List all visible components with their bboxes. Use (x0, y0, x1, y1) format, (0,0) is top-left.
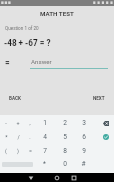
button[interactable]: 3 (74, 116, 93, 130)
staticText: . (29, 134, 31, 140)
staticText: 7 (43, 147, 47, 155)
button[interactable]: Backspace (96, 116, 114, 130)
button[interactable]: NEXT (86, 92, 112, 105)
button[interactable]: Space (0, 157, 35, 171)
button[interactable]: * (0, 130, 12, 144)
staticText: 9 (82, 147, 86, 155)
button[interactable]: = (24, 144, 36, 158)
staticText: - (5, 120, 7, 126)
staticText: = (29, 148, 32, 154)
staticText: , (29, 120, 31, 126)
button[interactable]: * (35, 157, 54, 171)
staticText: * (5, 134, 8, 140)
button[interactable]: / (12, 130, 24, 144)
staticText: ( (5, 148, 7, 154)
staticText: NEXT (93, 96, 105, 101)
button[interactable]: + (12, 116, 24, 130)
staticText: 5 (63, 133, 67, 141)
staticText: + (16, 120, 20, 126)
button[interactable]: 5 (55, 130, 74, 144)
staticText: 2 (63, 119, 67, 127)
staticText: # (81, 160, 86, 168)
button[interactable]: 8 (55, 144, 74, 158)
staticText: = (5, 58, 10, 68)
button[interactable]: Submit answer (96, 130, 114, 144)
button[interactable]: 0 (55, 157, 74, 171)
staticText: 1 (43, 119, 47, 127)
staticText: 6 (82, 133, 86, 141)
button[interactable]: BACK (2, 92, 28, 105)
staticText: -48 + -67 = ? (4, 38, 51, 48)
button[interactable]: ) (12, 144, 24, 158)
staticText: BACK (9, 96, 21, 101)
staticText: Answer (31, 58, 52, 65)
button[interactable]: 6 (74, 130, 93, 144)
staticText: 3 (82, 119, 86, 127)
button[interactable]: , (24, 116, 36, 130)
staticText: ) (17, 148, 19, 154)
staticText: 4 (43, 133, 47, 141)
staticText: MATH TEST (40, 10, 74, 17)
button[interactable]: 4 (35, 130, 54, 144)
button[interactable]: ( (0, 144, 12, 158)
staticText: 0 (63, 160, 67, 168)
button[interactable]: 2 (55, 116, 74, 130)
button[interactable]: 9 (74, 144, 93, 158)
button[interactable]: - (0, 116, 12, 130)
staticText: 8 (63, 147, 67, 155)
staticText: Question 1 of 20 (5, 26, 39, 31)
button[interactable]: 1 (35, 116, 54, 130)
staticText: * (43, 160, 46, 168)
button[interactable]: MATH TEST (0, 6, 114, 21)
button[interactable]: # (74, 157, 93, 171)
staticText: / (17, 134, 20, 140)
button[interactable]: 7 (35, 144, 54, 158)
